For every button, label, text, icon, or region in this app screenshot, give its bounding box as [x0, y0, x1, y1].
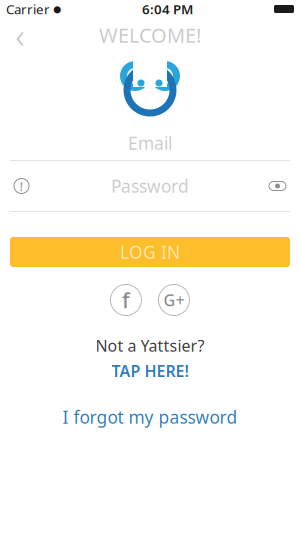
button[interactable]: Back: [0, 18, 40, 52]
staticText: Email: [128, 131, 172, 154]
staticText: 6:04 PM: [142, 0, 193, 18]
staticText: LOG IN: [120, 240, 180, 263]
staticText: I forgot my password: [62, 405, 237, 428]
staticText: Carrier: [6, 0, 50, 18]
staticText: Password: [111, 174, 189, 197]
staticText: ●: [53, 4, 61, 14]
button[interactable]: LOG IN: [0, 237, 300, 267]
button[interactable]: Password: [0, 161, 300, 211]
staticText: TAP HERE!: [111, 360, 188, 381]
staticText: Not a Yattsier?: [95, 335, 204, 356]
button[interactable]: Sign in with Facebook: [109, 283, 143, 317]
staticText: f: [122, 286, 130, 314]
button[interactable]: I forgot my password: [52, 401, 247, 432]
staticText: WELCOME!: [99, 22, 201, 48]
staticText: ‹: [15, 12, 24, 58]
staticText: !: [19, 177, 23, 195]
button[interactable]: Sign in with Google: [157, 283, 191, 317]
button[interactable]: Email: [0, 126, 300, 160]
staticText: G+: [163, 289, 184, 311]
button[interactable]: TAP HERE!: [103, 358, 196, 383]
